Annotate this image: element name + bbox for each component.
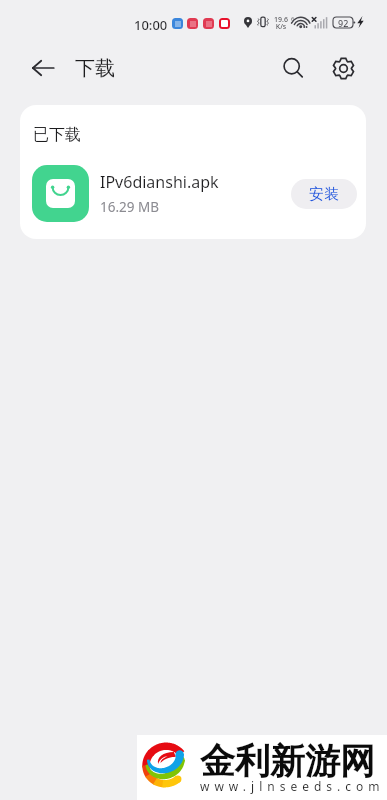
staticText: www.jlnseeds.com [200,778,385,794]
button[interactable]: Back [26,51,60,85]
button[interactable]: Search [274,49,312,87]
staticText: 安装 [309,185,339,204]
staticText: 10:00 [134,16,168,34]
staticText: 92 [338,17,349,28]
staticText: 下载 [75,56,115,81]
staticText: 6 [291,15,295,23]
staticText: 金利新游网 [200,739,375,783]
staticText: 已下载 [33,125,81,145]
staticText: 19.6 K/s [274,15,288,32]
button[interactable]: 安装 [291,179,357,209]
button[interactable]: Settings [324,49,362,87]
staticText: IPv6dianshi.apk [100,171,219,193]
button[interactable]: IPv6dianshi.apk [20,154,366,233]
staticText: 16.29 MB [100,198,160,216]
